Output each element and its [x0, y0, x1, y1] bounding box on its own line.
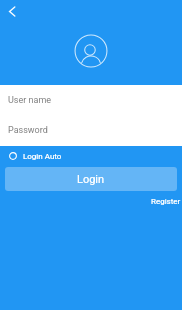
button[interactable]: Password [0, 115, 182, 145]
button[interactable]: Back [0, 0, 24, 24]
button[interactable]: Login [5, 167, 177, 191]
staticText: Register [151, 197, 181, 206]
button[interactable]: Register [148, 194, 182, 209]
button[interactable]: User name [0, 85, 182, 115]
staticText: Login Auto [23, 152, 62, 161]
staticText: Login [77, 173, 105, 186]
staticText: Password [8, 125, 48, 136]
staticText: User name [8, 95, 52, 106]
button[interactable]: Login Auto [7, 147, 64, 165]
